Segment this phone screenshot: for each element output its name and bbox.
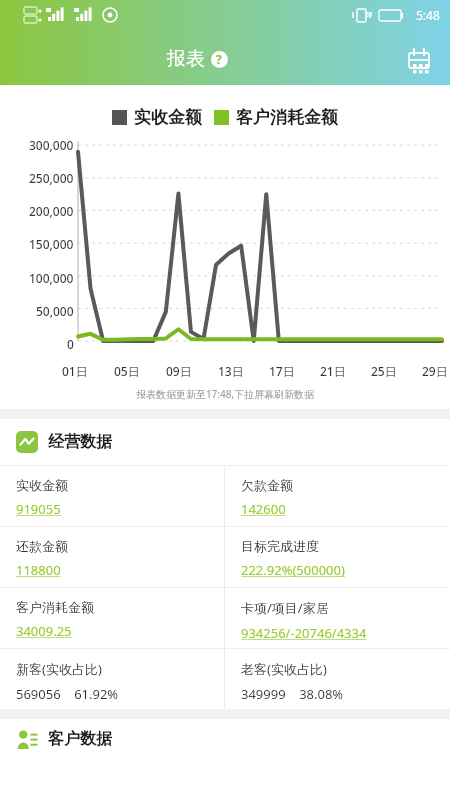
button[interactable]: 经营数据 — [0, 419, 450, 465]
staticText: 报表 — [167, 47, 205, 71]
staticText: 客户消耗金额 — [236, 107, 338, 128]
staticText: 客户数据 — [48, 729, 112, 749]
staticText: 934256/-20746/4334 — [241, 624, 367, 642]
staticText: 01日 — [62, 363, 88, 379]
staticText: 客户消耗金额 — [16, 599, 94, 615]
staticText: 300,000 — [29, 137, 74, 153]
staticText: 实收金额 — [134, 107, 202, 128]
staticText: 200,000 — [29, 203, 74, 219]
button[interactable]: 目标完成进度 — [225, 527, 450, 587]
staticText: 目标完成进度 — [241, 538, 319, 554]
staticText: 150,000 — [29, 236, 74, 252]
staticText: 34009.25 — [16, 622, 72, 640]
staticText: 还款金额 — [16, 538, 68, 554]
staticText: 13日 — [218, 363, 244, 379]
staticText: 569056 61.92% — [16, 685, 119, 703]
staticText: 118800 — [16, 561, 61, 579]
button[interactable]: Calendar — [402, 42, 436, 76]
staticText: 05日 — [114, 363, 140, 379]
button[interactable]: 实收金额 — [0, 466, 224, 526]
button[interactable]: 新客(实收占比) — [0, 649, 224, 709]
staticText: 经营数据 — [48, 432, 112, 452]
button[interactable]: 客户数据 — [0, 719, 450, 759]
button[interactable]: 欠款金额 — [225, 466, 450, 526]
staticText: 报表数据更新至17:48,下拉屏幕刷新数据 — [0, 387, 450, 401]
staticText: 51 — [365, 10, 374, 20]
staticText: 卡项/项目/家居 — [241, 599, 329, 617]
button[interactable]: 卡项/项目/家居 — [225, 588, 450, 648]
staticText: 欠款金额 — [241, 477, 293, 493]
staticText: 25日 — [371, 363, 397, 379]
staticText: 新客(实收占比) — [16, 660, 102, 678]
staticText: 100,000 — [29, 270, 74, 286]
staticText: 实收金额 — [16, 477, 68, 493]
button[interactable]: 老客(实收占比) — [225, 649, 450, 709]
staticText: 50,000 — [36, 303, 74, 319]
staticText: 17日 — [269, 363, 295, 379]
staticText: 919055 — [16, 500, 61, 518]
staticText: 0 — [67, 336, 74, 352]
staticText: 222.92%(500000) — [241, 561, 345, 579]
button[interactable]: 客户消耗金额 — [0, 588, 224, 648]
staticText: 5:48 — [416, 7, 440, 23]
staticText: 29日 — [422, 363, 448, 379]
staticText: 21日 — [320, 363, 346, 379]
staticText: ? — [216, 51, 222, 67]
button[interactable]: 还款金额 — [0, 527, 224, 587]
staticText: 142600 — [241, 500, 286, 518]
staticText: 349999 38.08% — [241, 685, 344, 703]
staticText: 250,000 — [29, 170, 74, 186]
button[interactable]: 报表 — [161, 41, 240, 77]
staticText: 老客(实收占比) — [241, 660, 327, 678]
staticText: 09日 — [166, 363, 192, 379]
